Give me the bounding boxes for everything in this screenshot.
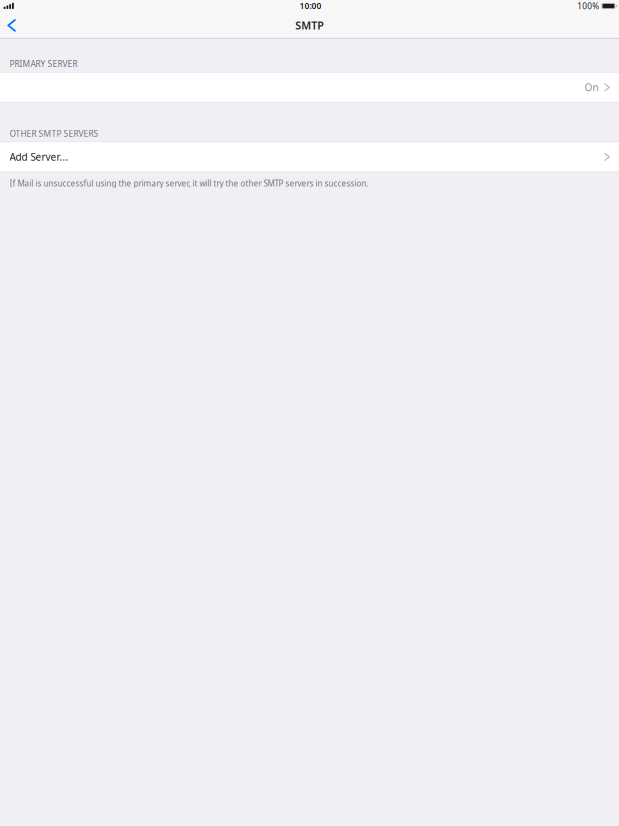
staticText: SMTP [295,18,324,33]
staticText: 10:00 [299,0,321,11]
button[interactable]: On [0,72,619,102]
staticText: On [584,81,598,94]
staticText: If Mail is unsuccessful using the primar… [10,178,369,189]
staticText: OTHER SMTP SERVERS [10,128,99,139]
staticText: Add Server... [10,150,69,164]
button[interactable]: Back [0,15,23,36]
button[interactable]: Add Server... [0,142,619,172]
staticText: PRIMARY SERVER [10,58,78,69]
staticText: 100% [577,0,599,12]
